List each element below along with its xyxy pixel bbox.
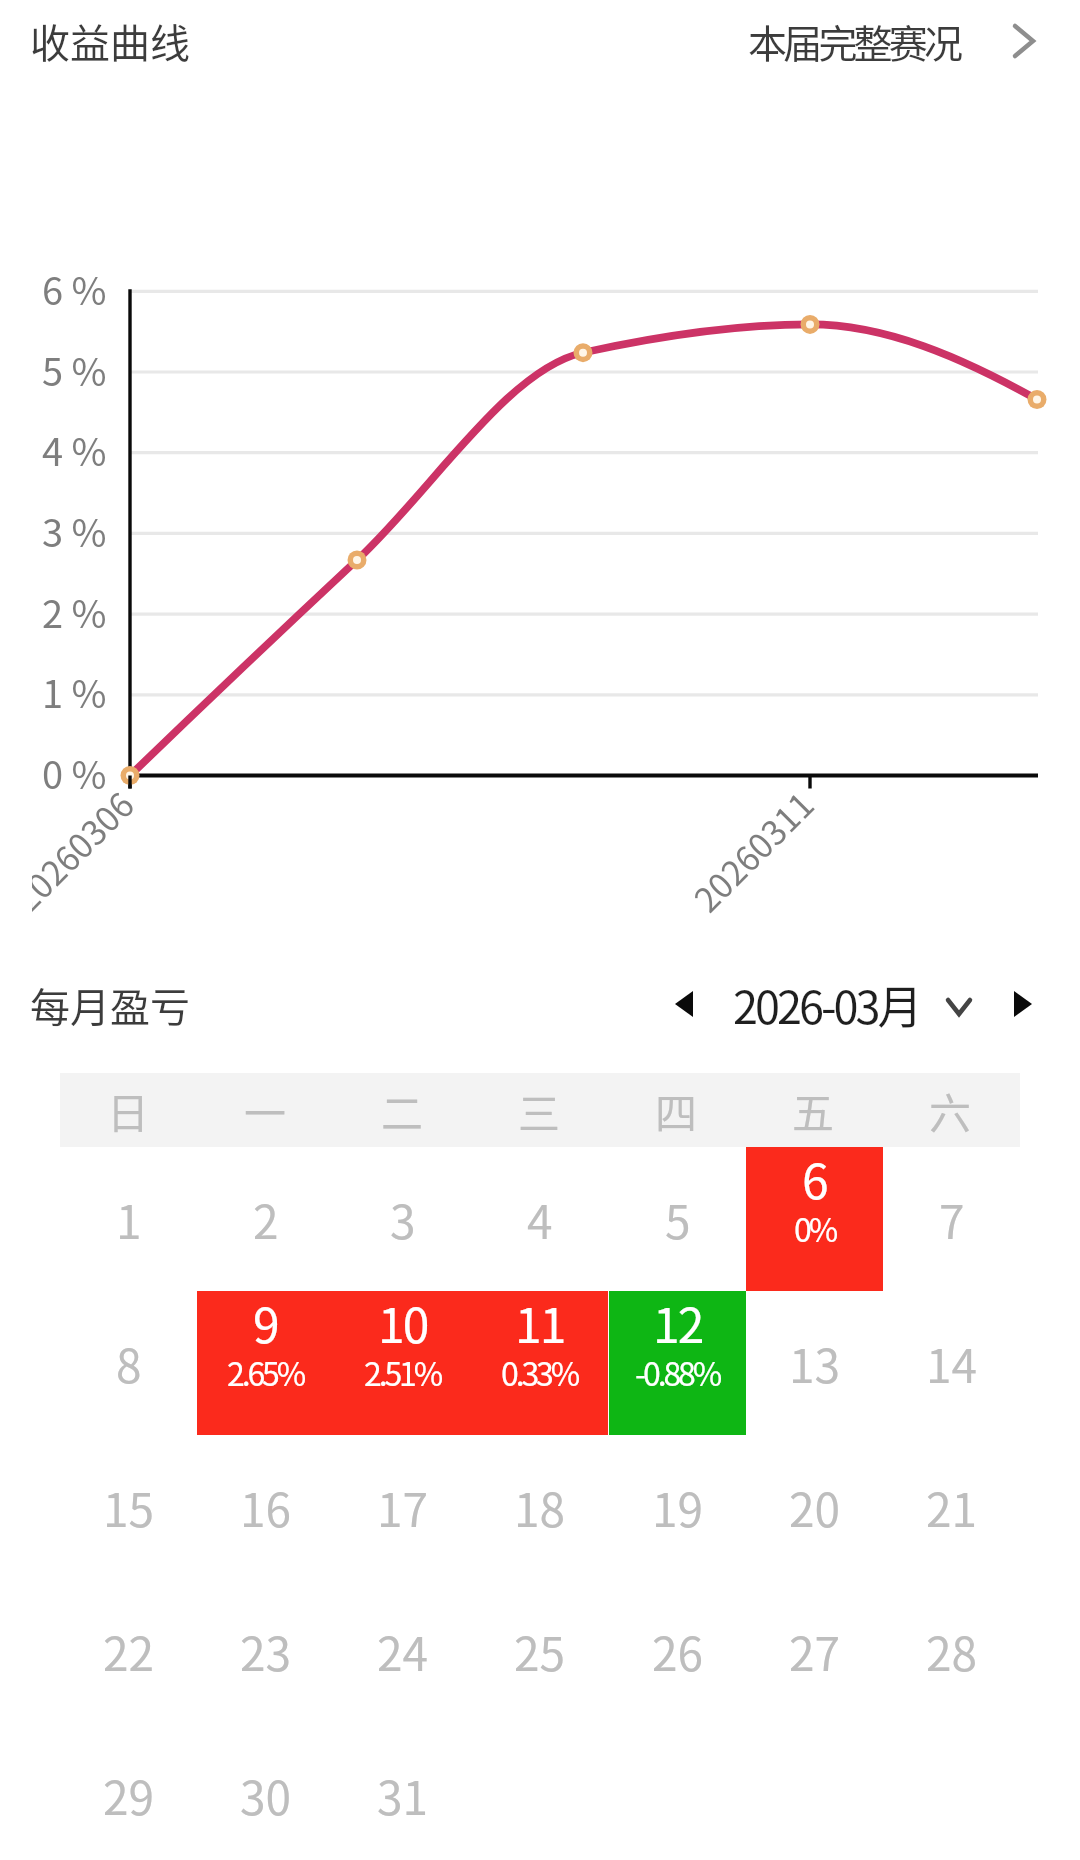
button[interactable]: 10 xyxy=(334,1291,471,1435)
staticText: 13 xyxy=(789,1330,841,1397)
staticText: 26 xyxy=(652,1618,704,1685)
button[interactable]: 16 xyxy=(197,1435,334,1579)
staticText: -0.88% xyxy=(635,1349,720,1395)
staticText: 22 xyxy=(103,1618,155,1685)
staticText: 5 xyxy=(665,1186,691,1253)
button[interactable]: 8 xyxy=(60,1291,197,1435)
button[interactable]: 19 xyxy=(609,1435,746,1579)
staticText: 20 xyxy=(789,1474,841,1541)
button[interactable]: 22 xyxy=(60,1579,197,1723)
staticText: 0% xyxy=(794,1205,836,1251)
staticText: 9 xyxy=(253,1287,278,1357)
staticText: 一 xyxy=(244,1080,287,1141)
staticText: 21 xyxy=(926,1474,978,1541)
staticText: 2 xyxy=(253,1186,279,1253)
button[interactable]: Next month xyxy=(987,968,1059,1040)
staticText: 17 xyxy=(377,1474,429,1541)
button[interactable]: 25 xyxy=(471,1579,608,1723)
staticText: 4 xyxy=(527,1186,553,1253)
staticText: 六 xyxy=(929,1080,972,1141)
staticText: 27 xyxy=(789,1618,841,1685)
button[interactable]: 每月盈亏 xyxy=(30,974,190,1036)
staticText: 23 xyxy=(240,1618,292,1685)
button[interactable]: 收益曲线 xyxy=(30,10,190,72)
button[interactable]: 12 xyxy=(609,1291,746,1435)
button[interactable]: 28 xyxy=(883,1579,1020,1723)
staticText: 2.65% xyxy=(227,1349,304,1395)
staticText: 10 xyxy=(378,1287,428,1357)
staticText: 3 xyxy=(390,1186,416,1253)
button[interactable]: Previous month xyxy=(648,968,720,1040)
staticText: 本届完整赛况 xyxy=(748,13,960,69)
button[interactable]: 11 xyxy=(471,1291,608,1435)
staticText: 五 xyxy=(792,1080,835,1141)
button[interactable]: 本届完整赛况 xyxy=(748,10,1034,72)
button[interactable]: 1 xyxy=(60,1147,197,1291)
staticText: 31 xyxy=(377,1762,429,1829)
staticText: 三 xyxy=(518,1080,561,1141)
button[interactable]: 6 xyxy=(746,1147,883,1291)
button[interactable]: 26 xyxy=(609,1579,746,1723)
button[interactable]: 15 xyxy=(60,1435,197,1579)
staticText: 2026-03月 xyxy=(733,972,920,1037)
staticText: 24 xyxy=(377,1618,429,1685)
button[interactable]: 14 xyxy=(883,1291,1020,1435)
staticText: 收益曲线 xyxy=(30,12,190,70)
staticText: 每月盈亏 xyxy=(30,976,190,1034)
button[interactable]: 9 xyxy=(197,1291,334,1435)
button[interactable]: 20 xyxy=(746,1435,883,1579)
staticText: 14 xyxy=(926,1330,978,1397)
button[interactable]: 3 xyxy=(334,1147,471,1291)
staticText: 12 xyxy=(653,1287,703,1357)
staticText: 6 xyxy=(802,1143,827,1213)
staticText: 0.33% xyxy=(501,1349,578,1395)
button[interactable]: 2 xyxy=(197,1147,334,1291)
button[interactable]: 7 xyxy=(883,1147,1020,1291)
staticText: 29 xyxy=(103,1762,155,1829)
staticText: 7 xyxy=(939,1186,965,1253)
staticText: 18 xyxy=(514,1474,566,1541)
staticText: 日 xyxy=(107,1080,150,1141)
button[interactable]: 29 xyxy=(60,1723,197,1860)
button[interactable]: 27 xyxy=(746,1579,883,1723)
button[interactable]: 24 xyxy=(334,1579,471,1723)
staticText: 16 xyxy=(240,1474,292,1541)
staticText: 二 xyxy=(381,1080,424,1141)
button[interactable]: 23 xyxy=(197,1579,334,1723)
staticText: 1 xyxy=(116,1186,142,1253)
button[interactable]: 30 xyxy=(197,1723,334,1860)
staticText: 30 xyxy=(240,1762,292,1829)
staticText: 25 xyxy=(514,1618,566,1685)
staticText: 2.51% xyxy=(364,1349,441,1395)
button[interactable]: 2026-03月 xyxy=(733,968,973,1040)
button[interactable]: 17 xyxy=(334,1435,471,1579)
button[interactable]: 21 xyxy=(883,1435,1020,1579)
staticText: 19 xyxy=(652,1474,704,1541)
staticText: 8 xyxy=(116,1330,142,1397)
staticText: 11 xyxy=(515,1287,565,1357)
button[interactable]: 18 xyxy=(471,1435,608,1579)
button[interactable]: 31 xyxy=(334,1723,471,1860)
button[interactable]: 13 xyxy=(746,1291,883,1435)
staticText: 四 xyxy=(655,1080,698,1141)
staticText: 15 xyxy=(103,1474,155,1541)
button[interactable]: 4 xyxy=(471,1147,608,1291)
button[interactable]: 5 xyxy=(609,1147,746,1291)
staticText: 28 xyxy=(926,1618,978,1685)
